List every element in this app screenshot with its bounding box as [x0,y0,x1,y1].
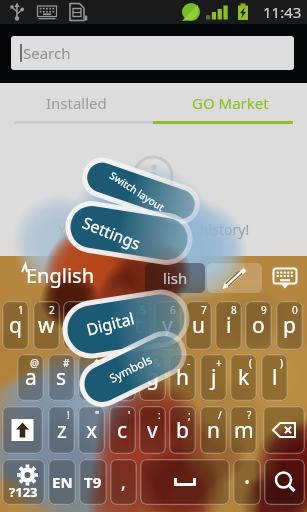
button[interactable]: r [93,301,120,350]
staticText: 7 [201,303,207,317]
staticText: 5 [140,303,146,317]
button[interactable]: Search [11,36,294,70]
staticText: 11:43 [263,2,302,22]
button[interactable]: lish [145,263,205,293]
staticText: ; [188,408,191,422]
staticText: Symbols [107,351,155,386]
staticText: Installed [46,93,107,113]
staticText: a [25,363,37,392]
button[interactable]: f [109,354,136,401]
staticText: ) [280,356,283,370]
staticText: o [252,311,265,340]
staticText: s [56,363,67,392]
button[interactable]: Digital [49,299,171,349]
button[interactable]: a [17,354,44,401]
button[interactable]: T9 [79,459,107,505]
button[interactable]: q [2,301,29,350]
staticText: n [207,416,220,445]
button[interactable]: z [48,406,75,454]
button[interactable]: EN [48,459,76,505]
staticText: T9 [84,472,102,492]
button[interactable]: shift [2,406,43,454]
staticText: , [121,470,126,495]
button[interactable]: y [154,301,181,350]
staticText: 8 [231,303,237,317]
button[interactable]: p [276,301,303,350]
button[interactable]: Switch keyboard [268,261,302,295]
button[interactable]: n [200,406,227,454]
button[interactable]: m [230,406,257,454]
staticText: You have not got any history! [58,220,250,239]
staticText: x [86,416,98,445]
staticText: t [134,311,142,340]
staticText: GO Market [192,93,269,113]
button[interactable]: , [110,459,137,505]
button[interactable]: w [33,301,60,350]
button[interactable]: c [109,406,136,454]
staticText: u [192,311,205,340]
button[interactable]: period [233,459,261,505]
staticText: v [147,416,158,445]
button[interactable]: g [139,354,166,401]
staticText: - [187,356,191,370]
staticText: ! [67,408,70,422]
staticText: d [85,363,98,392]
staticText: Settings [79,212,144,255]
button[interactable]: j [200,354,227,401]
staticText: i [226,311,232,340]
staticText: g [146,363,159,392]
button[interactable]: Symbols [72,332,189,406]
button[interactable]: k [230,354,257,401]
button[interactable]: o [245,301,272,350]
staticText: & [153,356,161,370]
button[interactable]: e [63,301,90,350]
staticText: r [102,311,111,340]
staticText: Switch layout [107,168,168,214]
button[interactable]: u [185,301,212,350]
button[interactable]: Settings [51,200,171,266]
button[interactable]: search [264,459,305,505]
staticText: English [26,262,95,289]
staticText: 9 [261,303,267,317]
staticText: ( [249,356,252,370]
staticText: : [158,408,161,422]
button[interactable]: b [169,406,196,454]
button[interactable]: ?123 [2,459,45,505]
button[interactable]: t [124,301,151,350]
staticText: q [9,311,22,340]
staticText: k [238,363,250,392]
staticText: EN [52,472,73,492]
staticText: b [176,416,189,445]
staticText: lish [163,268,188,288]
button[interactable]: x [78,406,105,454]
button[interactable]: d [78,354,105,401]
button[interactable]: s [48,354,75,401]
staticText: + [216,356,222,370]
staticText: h [176,363,189,392]
button[interactable]: bksp [263,406,305,454]
staticText: e [71,311,83,340]
button[interactable]: l [261,354,288,401]
staticText: 3 [79,303,85,317]
button[interactable]: Edit [207,263,262,293]
button[interactable]: h [169,354,196,401]
staticText: l [272,363,278,392]
staticText: c [117,416,128,445]
button[interactable]: i [215,301,242,350]
staticText: 6 [170,303,176,317]
staticText: w [38,311,55,340]
staticText: y [162,311,173,340]
staticText: ? [247,408,252,422]
button[interactable]: v [139,406,166,454]
button[interactable]: Installed [0,93,153,124]
staticText: ' [128,408,131,422]
staticText: @ [30,356,39,370]
staticText: # [63,356,70,370]
staticText: ?123 [9,483,38,501]
staticText: Digital [84,307,137,340]
staticText: $ [94,356,100,370]
button[interactable]: GO Market [153,93,307,124]
button[interactable]: space [140,459,230,505]
button[interactable]: Switch layout [81,149,193,233]
